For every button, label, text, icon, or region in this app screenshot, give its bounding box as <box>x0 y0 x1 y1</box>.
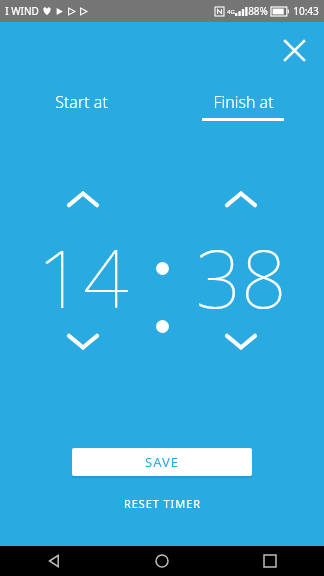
staticText: 4G <box>227 8 235 16</box>
button[interactable]: RESET TIMER <box>124 496 201 511</box>
button[interactable]: Decrease minutes <box>206 324 276 358</box>
button[interactable]: Start at <box>0 91 162 127</box>
button[interactable]: Increase minutes <box>206 182 276 216</box>
staticText: 10:43 <box>293 4 319 18</box>
button[interactable]: Decrease hours <box>48 324 118 358</box>
button[interactable]: SAVE <box>72 448 252 476</box>
staticText: 14 <box>37 222 129 318</box>
staticText: 88% <box>248 4 268 18</box>
button[interactable]: Increase hours <box>48 182 118 216</box>
staticText: 38 <box>195 222 287 318</box>
staticText: RESET TIMER <box>124 496 201 511</box>
staticText: Start at <box>55 91 108 113</box>
staticText: I WIND <box>5 4 39 18</box>
button[interactable]: Recent apps <box>216 546 324 576</box>
button[interactable]: Back <box>0 546 108 576</box>
staticText: SAVE <box>145 453 179 471</box>
button[interactable]: Home <box>108 546 216 576</box>
button[interactable]: Finish at <box>162 91 324 127</box>
button[interactable]: Close <box>272 28 316 72</box>
staticText: Finish at <box>213 91 274 113</box>
